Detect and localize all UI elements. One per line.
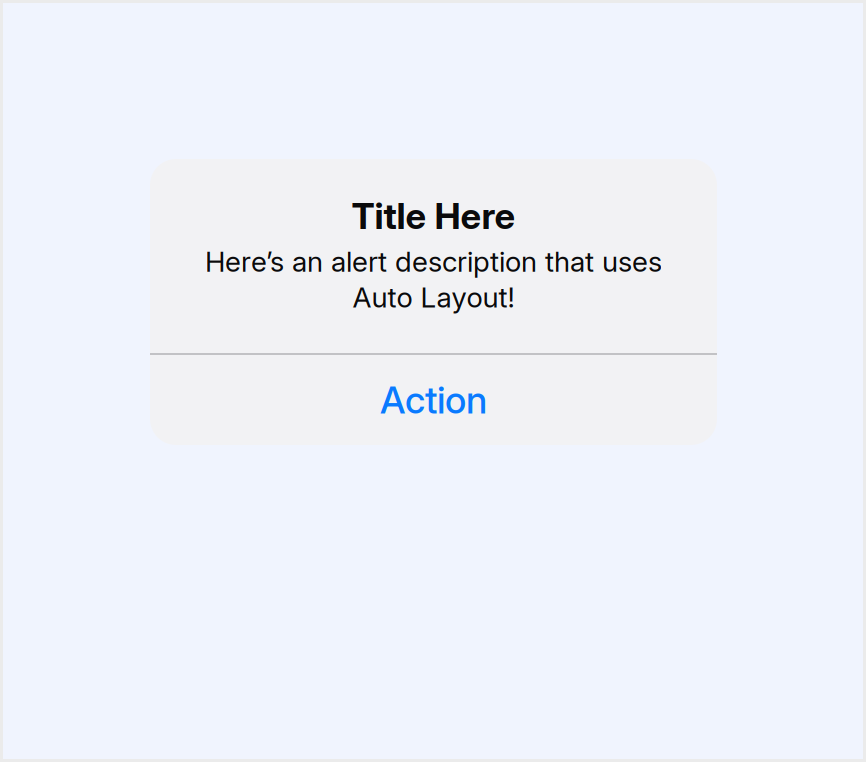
button[interactable]: Action [150,355,717,445]
staticText: Auto Layout! [352,280,514,314]
staticText: Action [380,377,487,423]
staticText: Title Here [351,194,515,238]
staticText: Here’s an alert description that uses [205,245,662,278]
